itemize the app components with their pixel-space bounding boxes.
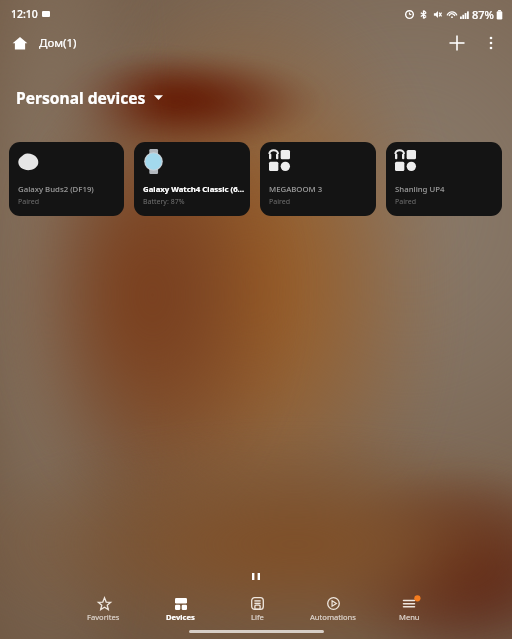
staticText: Battery: 87%: [143, 197, 185, 207]
button[interactable]: Personal devices: [16, 87, 163, 108]
button[interactable]: Favorites: [65, 589, 142, 629]
staticText: 87%: [472, 7, 494, 22]
staticText: Automations: [310, 612, 356, 622]
button[interactable]: Pause: [249, 571, 263, 581]
staticText: Shanling UP4: [395, 184, 445, 195]
button[interactable]: Galaxy Buds2 (DF19): [9, 142, 124, 216]
staticText: Favorites: [87, 612, 120, 622]
button[interactable]: Shanling UP4: [386, 142, 502, 216]
staticText: Life: [251, 612, 264, 622]
button[interactable]: Life: [219, 589, 295, 629]
staticText: Menu: [399, 612, 420, 622]
staticText: Paired: [269, 197, 290, 207]
staticText: Galaxy Watch4 Classic (69…: [143, 184, 245, 195]
staticText: Paired: [395, 197, 416, 207]
button[interactable]: Galaxy Watch4 Classic (69…: [134, 142, 250, 216]
staticText: Paired: [18, 197, 39, 207]
button[interactable]: Дом(1): [0, 35, 85, 51]
button[interactable]: MEGABOOM 3: [260, 142, 376, 216]
staticText: Personal devices: [16, 87, 146, 108]
button[interactable]: Automations: [295, 589, 371, 629]
button[interactable]: Add device: [440, 29, 474, 57]
button[interactable]: Devices: [142, 589, 219, 629]
staticText: Дом(1): [39, 35, 77, 51]
button[interactable]: More options: [474, 29, 508, 57]
button[interactable]: Menu: [371, 589, 447, 629]
staticText: 12:10: [11, 7, 38, 21]
staticText: MEGABOOM 3: [269, 184, 323, 195]
staticText: Galaxy Buds2 (DF19): [18, 184, 94, 195]
staticText: Devices: [166, 612, 195, 622]
